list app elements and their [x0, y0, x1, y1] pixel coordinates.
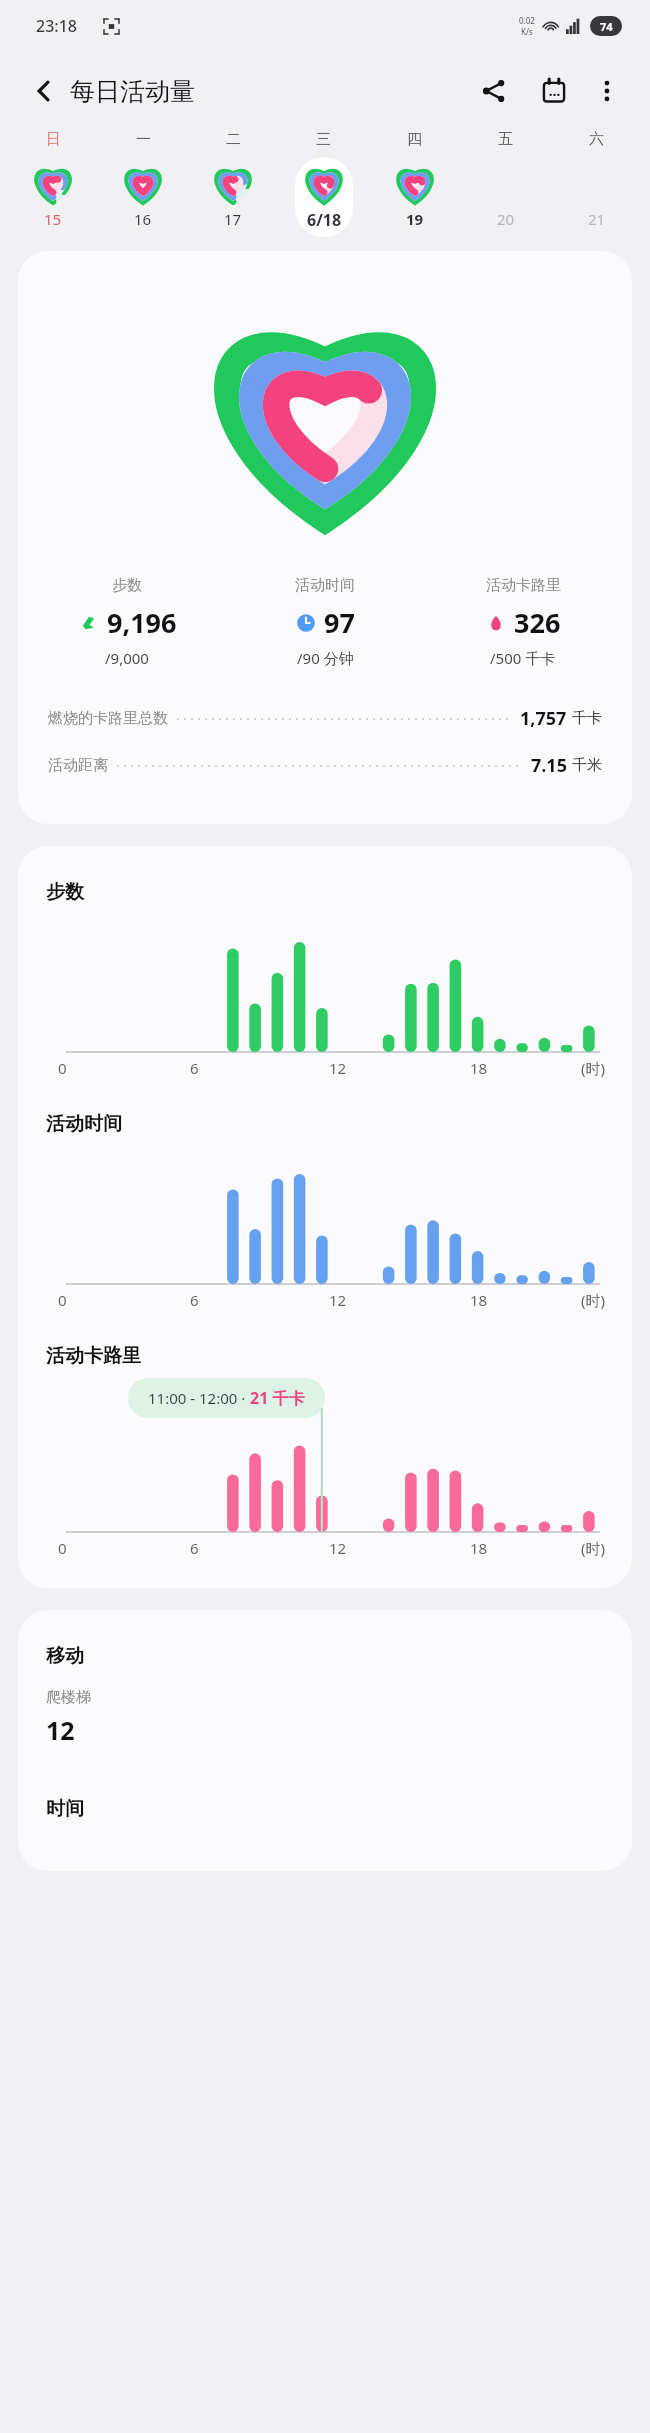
- staticText: 活动时间: [295, 576, 355, 595]
- staticText: 11:00 - 12:00 ·: [148, 1388, 250, 1408]
- staticText: 四: [407, 130, 422, 149]
- staticText: 21 千卡: [250, 1387, 305, 1409]
- staticText: /90 分钟: [297, 648, 354, 668]
- button[interactable]: 步数: [18, 251, 632, 824]
- staticText: K/s: [521, 26, 533, 37]
- staticText: 每日活动量: [70, 76, 195, 107]
- button[interactable]: Back: [22, 69, 66, 113]
- staticText: 六: [589, 130, 604, 149]
- staticText: 一: [136, 130, 151, 149]
- staticText: 12: [329, 1538, 347, 1558]
- staticText: 6: [190, 1290, 199, 1310]
- button[interactable]: 燃烧的卡路里总数: [48, 706, 602, 731]
- staticText: 20: [497, 209, 515, 229]
- button[interactable]: 活动距离: [48, 753, 602, 778]
- staticText: 74: [600, 19, 613, 34]
- staticText: 0: [58, 1058, 67, 1078]
- staticText: 16: [134, 209, 152, 229]
- staticText: 0: [58, 1290, 67, 1310]
- staticText: 23:18: [36, 15, 77, 37]
- button[interactable]: 活动时间: [226, 576, 424, 668]
- staticText: 五: [498, 130, 513, 149]
- staticText: 18: [470, 1538, 488, 1558]
- staticText: 千米: [572, 756, 602, 775]
- staticText: 活动时间: [46, 1112, 122, 1136]
- staticText: 爬楼梯: [46, 1688, 91, 1707]
- button[interactable]: 活动时间: [18, 1112, 632, 1310]
- staticText: /9,000: [105, 648, 149, 668]
- staticText: 6/18: [307, 209, 342, 231]
- button[interactable]: Share: [470, 67, 518, 115]
- staticText: 12: [329, 1058, 347, 1078]
- staticText: /500 千卡: [490, 648, 556, 668]
- staticText: 7.15: [531, 753, 567, 778]
- staticText: 17: [224, 209, 242, 229]
- button[interactable]: 19: [386, 157, 444, 235]
- staticText: 步数: [46, 880, 84, 904]
- staticText: 活动卡路里: [46, 1344, 141, 1368]
- staticText: 6: [190, 1058, 199, 1078]
- button[interactable]: 20: [477, 157, 535, 235]
- staticText: 0.02: [519, 15, 535, 26]
- staticText: 19: [406, 209, 424, 229]
- staticText: 12: [46, 1713, 75, 1747]
- button[interactable]: 21: [568, 157, 626, 235]
- staticText: 日: [46, 130, 61, 149]
- staticText: 97: [324, 604, 355, 641]
- button[interactable]: 移动: [18, 1610, 632, 1871]
- staticText: 15: [44, 209, 62, 229]
- staticText: 活动距离: [48, 756, 108, 775]
- staticText: 21: [588, 209, 606, 229]
- staticText: 326: [514, 604, 561, 641]
- staticText: 1,757: [520, 706, 567, 731]
- staticText: 燃烧的卡路里总数: [48, 709, 168, 728]
- staticText: 12: [329, 1290, 347, 1310]
- button[interactable]: Calendar: [530, 67, 578, 115]
- staticText: (时): [581, 1538, 606, 1558]
- button[interactable]: 15: [24, 157, 82, 235]
- button[interactable]: 活动卡路里: [424, 576, 622, 668]
- button[interactable]: 6/18: [295, 157, 353, 237]
- staticText: 千卡: [572, 709, 602, 728]
- staticText: 18: [470, 1058, 488, 1078]
- staticText: (时): [581, 1058, 606, 1078]
- staticText: 步数: [112, 576, 142, 595]
- button[interactable]: 活动卡路里: [18, 1344, 632, 1558]
- staticText: 0: [58, 1538, 67, 1558]
- button[interactable]: 步数: [18, 880, 632, 1078]
- staticText: 6: [190, 1538, 199, 1558]
- staticText: (时): [581, 1290, 606, 1310]
- button[interactable]: More options: [584, 68, 630, 114]
- staticText: 三: [316, 130, 331, 149]
- staticText: 时间: [46, 1797, 84, 1821]
- staticText: 18: [470, 1290, 488, 1310]
- staticText: 9,196: [107, 604, 177, 641]
- button[interactable]: 17: [204, 157, 262, 235]
- button[interactable]: 16: [114, 157, 172, 235]
- button[interactable]: 步数: [28, 576, 226, 668]
- staticText: 移动: [46, 1644, 84, 1668]
- staticText: 二: [226, 130, 241, 149]
- staticText: 活动卡路里: [486, 576, 561, 595]
